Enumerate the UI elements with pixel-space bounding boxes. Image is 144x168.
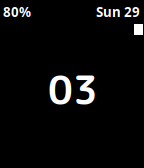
button[interactable]: Sun 29 <box>96 3 140 21</box>
staticText: Sun 29 <box>96 3 140 21</box>
button[interactable]: 03 <box>48 63 98 117</box>
staticText: 80% <box>3 3 31 21</box>
button[interactable]: 80% <box>3 3 31 21</box>
staticText: 03 <box>48 63 98 117</box>
